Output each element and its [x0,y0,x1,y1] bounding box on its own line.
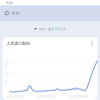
staticText: 2025/06/08 [69,95,87,99]
staticText: 9:41 [6,0,13,5]
staticText: 2025/02/16 [38,95,56,99]
staticText: 日本 · 過去 12 か月 [39,27,66,31]
button[interactable]: 詳細 [90,41,93,46]
button[interactable]: 日本 · 過去 12 か月 [0,21,100,37]
staticText: 0 [5,80,7,84]
staticText: 2024/10/27 [6,95,24,99]
staticText: 100 [5,62,9,69]
staticText: 検索 [11,11,19,16]
button[interactable]: 検索 [0,5,100,21]
staticText: 50 [5,73,9,76]
staticText: 人気度の動向 [6,41,30,46]
